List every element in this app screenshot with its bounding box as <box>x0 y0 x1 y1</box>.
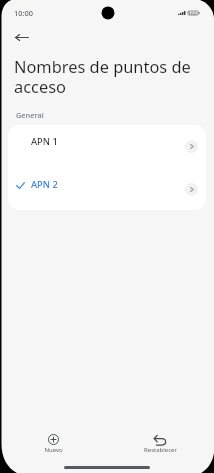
button[interactable]: Restablecer <box>107 429 214 449</box>
staticText: Nuevo <box>44 446 63 454</box>
staticText: 10:00 <box>14 8 33 18</box>
staticText: 100 <box>188 11 197 15</box>
button[interactable]: Editar APN 2 <box>185 183 198 196</box>
staticText: General <box>16 110 44 120</box>
staticText: Restablecer <box>144 446 177 454</box>
button[interactable]: Atrás <box>7 23 36 52</box>
staticText: APN 1 <box>31 135 58 148</box>
staticText: Nombres de puntos de acceso <box>14 55 204 98</box>
staticText: APN 2 <box>31 178 58 191</box>
button[interactable]: APN 2 <box>8 168 206 210</box>
button[interactable]: Editar APN 1 <box>185 140 198 153</box>
button[interactable]: Nuevo <box>0 429 107 449</box>
button[interactable]: APN 1 <box>8 125 206 168</box>
